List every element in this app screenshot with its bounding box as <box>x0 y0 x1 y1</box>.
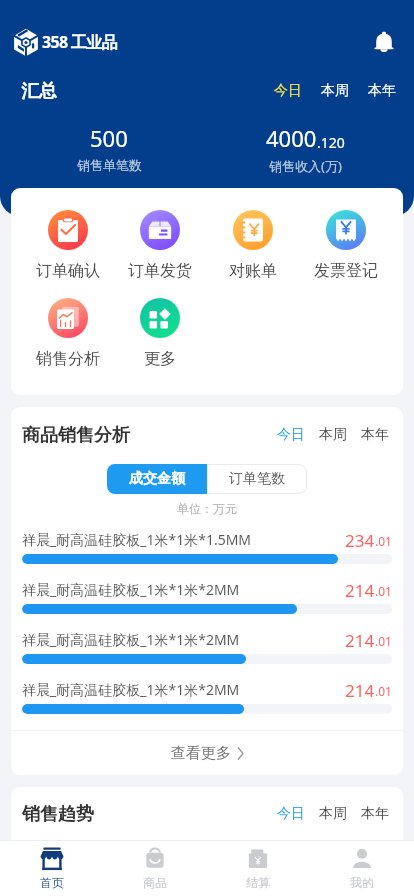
button[interactable]: Notifications <box>367 25 401 59</box>
button[interactable]: 商品 <box>103 841 206 896</box>
staticText: 本周 <box>319 805 347 823</box>
staticText: 祥晨_耐高温硅胶板_1米*1米*1.5MM <box>22 530 252 549</box>
button[interactable]: 销售分析 <box>22 298 114 369</box>
staticText: 商品 <box>143 875 167 890</box>
staticText: 销售单笔数 <box>77 157 142 173</box>
staticText: 查看更多 <box>171 744 231 763</box>
button[interactable]: 成交金额 <box>107 464 207 494</box>
staticText: 销售分析 <box>36 349 100 369</box>
staticText: 本年 <box>361 805 389 823</box>
staticText: 我的 <box>350 875 374 890</box>
staticText: 本年 <box>368 82 396 100</box>
button[interactable]: 今日 <box>274 423 308 447</box>
button[interactable]: 订单笔数 <box>207 464 307 494</box>
button[interactable]: 本周 <box>318 78 352 104</box>
staticText: 4000 <box>266 123 317 153</box>
staticText: 500 <box>90 123 128 153</box>
button[interactable]: 今日 <box>271 78 305 104</box>
staticText: 首页 <box>40 875 64 890</box>
staticText: 销售收入(万) <box>269 157 342 175</box>
button[interactable]: 本年 <box>358 423 392 447</box>
staticText: 祥晨_耐高温硅胶板_1米*1米*2MM <box>22 580 240 599</box>
staticText: .120 <box>317 133 345 152</box>
button[interactable]: 查看更多 <box>11 731 403 775</box>
staticText: 对账单 <box>229 261 277 281</box>
button[interactable]: 本周 <box>316 802 350 826</box>
staticText: 358 工业品 <box>42 31 117 53</box>
button[interactable]: 订单确认 <box>22 210 114 281</box>
button[interactable]: 本年 <box>365 78 399 104</box>
staticText: 祥晨_耐高温硅胶板_1米*1米*2MM <box>22 630 240 649</box>
staticText: 祥晨_耐高温硅胶板_1米*1米*2MM <box>22 680 240 699</box>
button[interactable]: 本周 <box>316 423 350 447</box>
staticText: 234 <box>345 529 375 550</box>
staticText: 订单发货 <box>128 261 192 281</box>
staticText: 更多 <box>144 349 176 369</box>
button[interactable]: 发票登记 <box>299 210 392 281</box>
staticText: .01 <box>375 583 392 599</box>
staticText: 今日 <box>277 426 305 444</box>
button[interactable]: 订单发货 <box>114 210 206 281</box>
staticText: 订单笔数 <box>229 470 285 488</box>
staticText: 结算 <box>246 875 270 890</box>
button[interactable]: 我的 <box>310 841 414 896</box>
staticText: 本周 <box>319 426 347 444</box>
staticText: 成交金额 <box>129 470 185 488</box>
staticText: 商品销售分析 <box>22 424 130 447</box>
staticText: 单位：万元 <box>177 501 237 516</box>
staticText: .01 <box>375 633 392 649</box>
staticText: 214 <box>345 579 375 600</box>
staticText: 214 <box>345 629 375 650</box>
button[interactable]: 今日 <box>274 802 308 826</box>
staticText: 销售趋势 <box>22 803 94 826</box>
staticText: 本年 <box>361 426 389 444</box>
staticText: 今日 <box>274 82 302 100</box>
staticText: .01 <box>375 683 392 699</box>
button[interactable]: 首页 <box>0 841 103 896</box>
button[interactable]: 更多 <box>114 298 206 369</box>
staticText: 汇总 <box>21 80 57 103</box>
staticText: 214 <box>345 679 375 700</box>
staticText: 发票登记 <box>314 261 378 281</box>
button[interactable]: 对账单 <box>206 210 299 281</box>
staticText: 今日 <box>277 805 305 823</box>
staticText: 本周 <box>321 82 349 100</box>
staticText: 订单确认 <box>36 261 100 281</box>
button[interactable]: 结算 <box>206 841 310 896</box>
button[interactable]: 本年 <box>358 802 392 826</box>
staticText: .01 <box>375 533 392 549</box>
